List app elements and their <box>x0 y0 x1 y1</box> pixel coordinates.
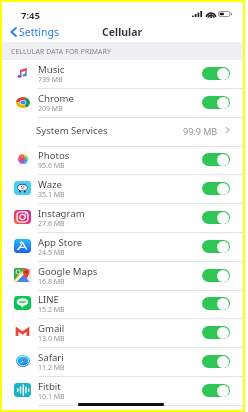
button[interactable]: Cellular data toggle, on <box>202 326 230 339</box>
staticText: 16.8 MB <box>38 277 65 287</box>
staticText: LINE <box>38 293 59 306</box>
staticText: 13.0 MB <box>38 334 65 344</box>
button[interactable]: Cellular data toggle, on <box>202 269 230 282</box>
staticText: CELLULAR DATA FOR PRIMARY <box>11 47 111 56</box>
button[interactable]: Cellular data toggle, on <box>202 96 230 109</box>
button[interactable]: Fitbit <box>2 377 243 406</box>
staticText: Instagram <box>38 207 85 220</box>
staticText: 15.2 MB <box>38 305 65 315</box>
staticText: 95.6 MB <box>38 161 65 171</box>
button[interactable]: Cellular data toggle, on <box>202 297 230 310</box>
button[interactable]: Waze <box>2 175 243 204</box>
staticText: Google Maps <box>38 265 98 278</box>
staticText: Gmail <box>38 322 65 335</box>
staticText: Chrome <box>38 92 74 105</box>
button[interactable]: Instagram <box>2 204 243 233</box>
staticText: 99.9 MB <box>183 125 218 137</box>
staticText: 739 MB <box>38 75 63 85</box>
button[interactable]: Photos <box>2 146 243 175</box>
button[interactable]: Gmail <box>2 319 243 348</box>
button[interactable]: Google Maps <box>2 262 243 291</box>
staticText: Photos <box>38 149 70 162</box>
staticText: Settings <box>19 25 59 39</box>
button[interactable]: Cellular data toggle, on <box>202 384 230 397</box>
button[interactable]: Safari <box>2 348 243 377</box>
staticText: System Services <box>36 124 108 137</box>
button[interactable]: Cellular data toggle, on <box>202 182 230 195</box>
button[interactable]: Cellular data toggle, on <box>202 153 230 166</box>
staticText: Cellular <box>102 25 143 39</box>
staticText: App Store <box>38 236 83 249</box>
button[interactable]: Chrome <box>2 89 243 118</box>
staticText: 11.2 MB <box>38 363 65 373</box>
button[interactable]: Settings <box>2 21 65 42</box>
staticText: Fitbit <box>38 380 61 393</box>
button[interactable]: System Services <box>2 118 243 147</box>
button[interactable]: LINE <box>2 290 243 319</box>
button[interactable]: Cellular data toggle, on <box>202 355 230 368</box>
staticText: Safari <box>38 351 64 364</box>
staticText: 10.1 MB <box>38 392 65 402</box>
button[interactable]: Cellular data toggle, on <box>202 240 230 253</box>
staticText: 24.5 MB <box>38 248 65 258</box>
staticText: 35.1 MB <box>38 190 65 200</box>
staticText: Music <box>38 63 65 76</box>
button[interactable]: App Store <box>2 233 243 262</box>
staticText: 209 MB <box>38 104 63 114</box>
staticText: Waze <box>38 178 63 191</box>
button[interactable]: Cellular data toggle, on <box>202 67 230 80</box>
button[interactable]: Cellular data toggle, on <box>202 211 230 224</box>
staticText: 7:45 <box>21 9 40 22</box>
staticText: 27.6 MB <box>38 219 65 229</box>
button[interactable]: Music <box>2 60 243 89</box>
